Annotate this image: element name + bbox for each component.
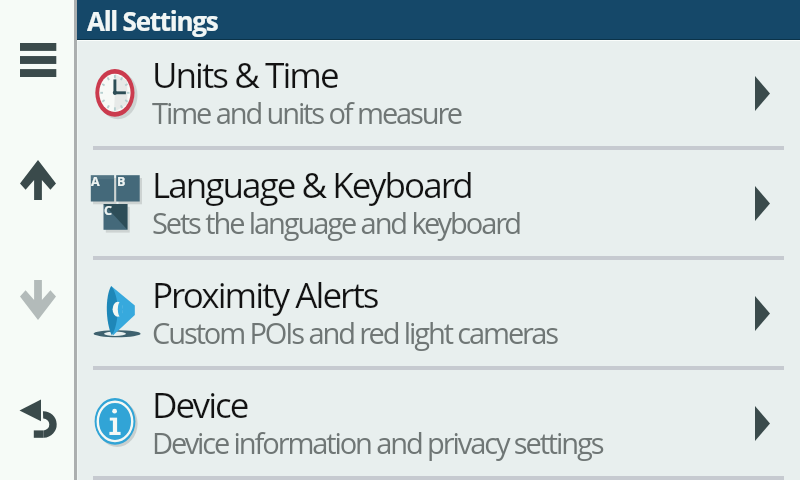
staticText: Units & Time xyxy=(152,51,338,99)
button[interactable]: Scroll down xyxy=(0,240,74,360)
staticText: A xyxy=(91,173,100,190)
staticText: Proximity Alerts xyxy=(152,271,378,319)
button[interactable]: A xyxy=(77,151,800,261)
staticText: C xyxy=(104,202,112,219)
button[interactable]: Proximity Alerts xyxy=(77,261,800,371)
button[interactable]: Units & Time xyxy=(77,41,800,151)
staticText: All Settings xyxy=(87,3,218,38)
button[interactable]: Back xyxy=(0,360,74,480)
staticText: Device information and privacy settings xyxy=(152,423,603,462)
staticText: Device xyxy=(152,381,248,429)
staticText: B xyxy=(117,173,126,190)
staticText: Custom POIs and red light cameras xyxy=(152,313,557,352)
button[interactable]: All Settings xyxy=(77,0,800,40)
button[interactable]: Device xyxy=(77,371,800,480)
button[interactable]: Scroll up xyxy=(0,120,74,240)
staticText: Time and units of measure xyxy=(152,93,461,132)
button[interactable]: Menu xyxy=(0,0,74,120)
staticText: Language & Keyboard xyxy=(152,161,472,209)
staticText: Sets the language and keyboard xyxy=(152,203,521,242)
